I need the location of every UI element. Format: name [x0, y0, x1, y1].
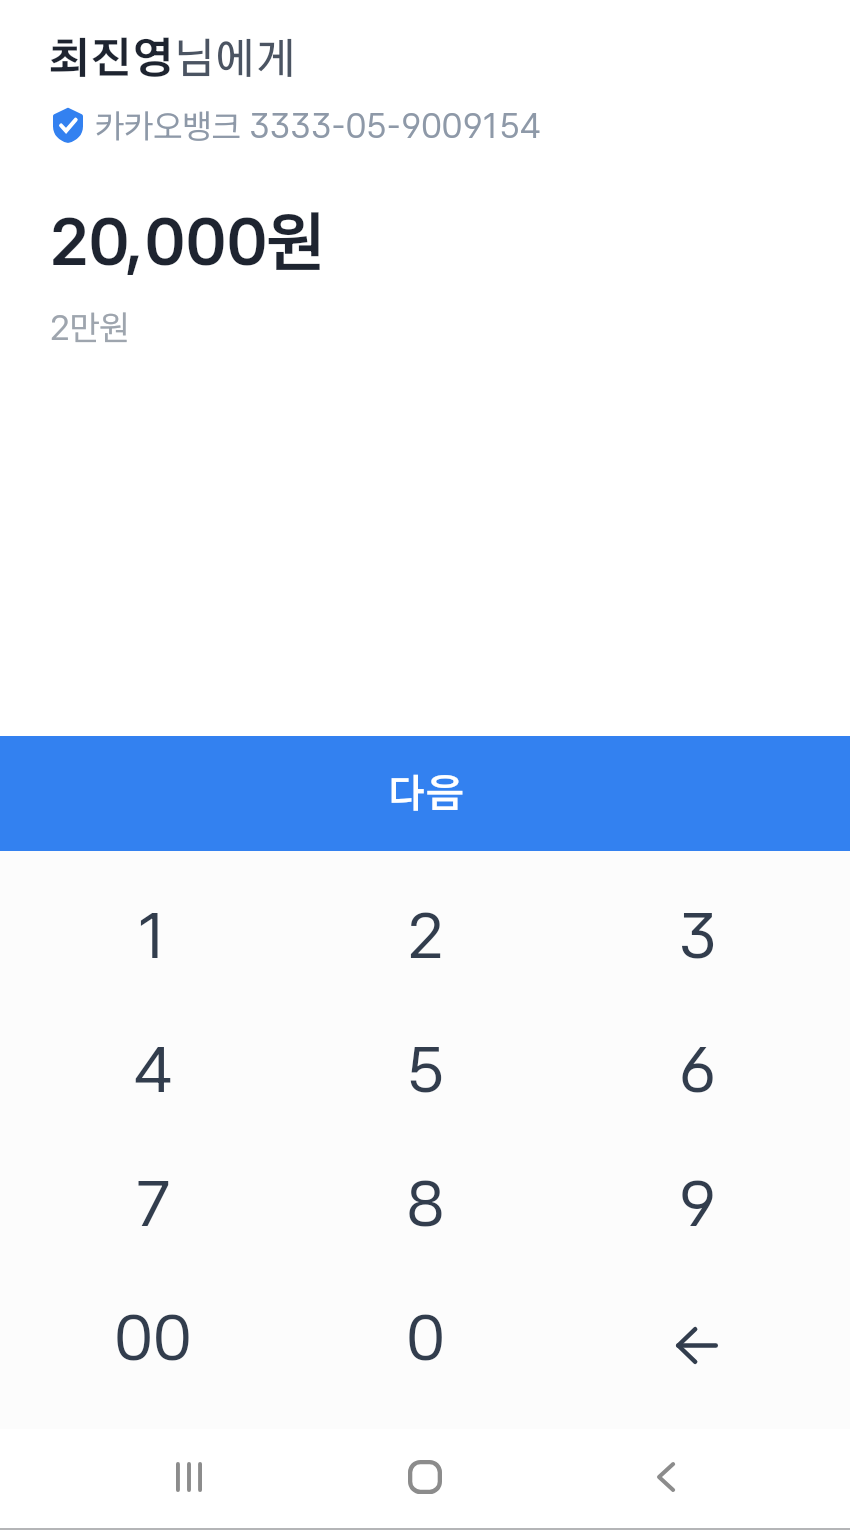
- button[interactable]: Backspace: [561, 1270, 833, 1404]
- staticText: 카카오뱅크 3333-05-9009154: [95, 106, 541, 147]
- staticText: 2: [407, 897, 444, 973]
- staticText: 9: [678, 1165, 717, 1241]
- button[interactable]: Back: [543, 1429, 779, 1525]
- button[interactable]: 2: [289, 868, 561, 1002]
- button[interactable]: Recent apps: [71, 1429, 307, 1525]
- button[interactable]: 8: [289, 1136, 561, 1270]
- button[interactable]: 00: [17, 1270, 289, 1404]
- staticText: 7: [136, 1165, 170, 1241]
- button[interactable]: 5: [289, 1002, 561, 1136]
- staticText: 다음: [387, 776, 464, 815]
- staticText: 00: [114, 1299, 192, 1375]
- staticText: 8: [406, 1165, 445, 1241]
- button[interactable]: 6: [561, 1002, 833, 1136]
- button[interactable]: 4: [17, 1002, 289, 1136]
- staticText: 0: [406, 1299, 445, 1375]
- staticText: 2만원: [50, 307, 130, 349]
- button[interactable]: 7: [17, 1136, 289, 1270]
- staticText: 3: [678, 897, 717, 973]
- staticText: 5: [406, 1031, 445, 1107]
- staticText: 4: [133, 1031, 173, 1107]
- button[interactable]: 1: [17, 868, 289, 1002]
- staticText: 6: [678, 1031, 717, 1107]
- staticText: 20,000원: [50, 201, 325, 281]
- staticText: 1: [137, 897, 169, 973]
- button[interactable]: 9: [561, 1136, 833, 1270]
- button[interactable]: 다음: [0, 736, 850, 851]
- button[interactable]: Home: [307, 1429, 543, 1525]
- staticText: 최진영님에게: [48, 39, 297, 81]
- button[interactable]: 0: [289, 1270, 561, 1404]
- button[interactable]: 3: [561, 868, 833, 1002]
